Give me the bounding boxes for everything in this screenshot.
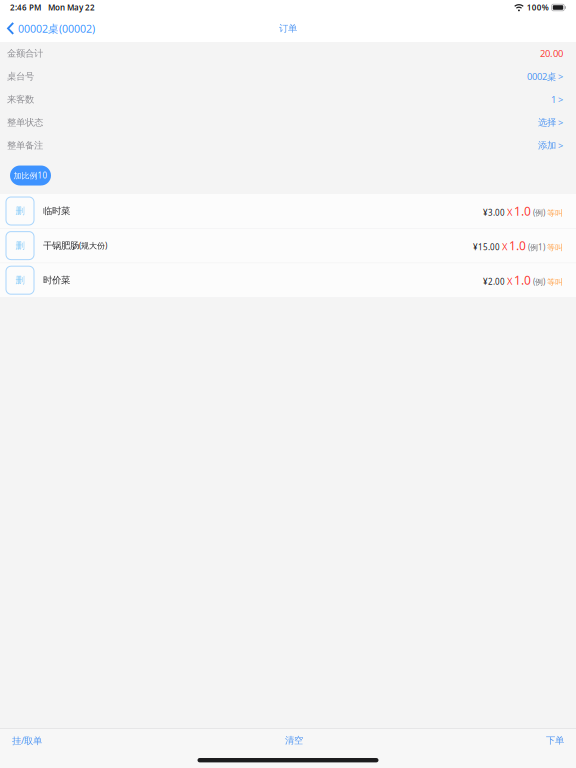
staticText: 1 bbox=[551, 93, 556, 106]
button[interactable]: 00002桌(00002) bbox=[0, 17, 101, 40]
button[interactable]: 清空 bbox=[275, 731, 313, 750]
staticText: ¥3.00 bbox=[483, 207, 505, 218]
button[interactable]: Delete item bbox=[6, 266, 34, 294]
staticText: 加比例10 bbox=[13, 170, 47, 181]
staticText: 来客数 bbox=[7, 94, 34, 105]
staticText: 等叫 bbox=[545, 208, 563, 218]
staticText: 删 bbox=[15, 240, 24, 251]
staticText: > bbox=[556, 70, 563, 83]
button[interactable]: 删 bbox=[0, 263, 576, 297]
staticText: 挂/取单 bbox=[12, 734, 42, 747]
button[interactable]: 删 bbox=[0, 194, 576, 228]
staticText: > bbox=[556, 93, 563, 106]
staticText: (例) bbox=[531, 207, 545, 218]
staticText: > bbox=[556, 116, 563, 129]
button[interactable]: 来客数 bbox=[0, 88, 576, 111]
staticText: 1.0 bbox=[514, 203, 531, 219]
staticText: 清空 bbox=[285, 735, 303, 746]
button[interactable]: 挂/取单 bbox=[2, 730, 52, 751]
staticText: 等叫 bbox=[545, 243, 563, 252]
staticText: X bbox=[505, 206, 514, 218]
staticText: (例1) bbox=[526, 242, 545, 252]
staticText: 删 bbox=[15, 274, 24, 286]
button[interactable]: 订单 bbox=[271, 18, 305, 39]
button[interactable]: 下单 bbox=[536, 731, 574, 750]
button[interactable]: 整单状态 bbox=[0, 111, 576, 134]
staticText: 整单备注 bbox=[7, 140, 43, 151]
staticText: 下单 bbox=[546, 735, 564, 746]
staticText: X bbox=[505, 275, 514, 287]
button[interactable]: 整单备注 bbox=[0, 134, 576, 157]
staticText: 订单 bbox=[279, 23, 297, 34]
button[interactable]: 金额合计 bbox=[0, 42, 576, 65]
staticText: X bbox=[500, 240, 509, 253]
staticText: (规大份) bbox=[79, 240, 107, 251]
staticText: 00002桌(00002) bbox=[18, 21, 95, 36]
button[interactable]: 删 bbox=[0, 229, 576, 263]
button[interactable]: 桌台号 bbox=[0, 65, 576, 88]
button[interactable]: Delete item bbox=[6, 232, 34, 260]
staticText: 等叫 bbox=[545, 277, 563, 287]
staticText: ¥2.00 bbox=[483, 276, 505, 287]
staticText: 2:46 PM bbox=[10, 2, 41, 13]
staticText: 20.00 bbox=[540, 47, 563, 60]
staticText: 1.0 bbox=[509, 238, 526, 253]
staticText: ¥15.00 bbox=[473, 242, 500, 252]
staticText: 1.0 bbox=[514, 272, 531, 288]
staticText: 删 bbox=[15, 205, 24, 217]
staticText: Mon May 22 bbox=[48, 2, 95, 13]
staticText: 金额合计 bbox=[7, 48, 43, 59]
staticText: 临时菜 bbox=[43, 205, 70, 217]
staticText: 整单状态 bbox=[7, 117, 43, 128]
staticText: 添加 bbox=[538, 140, 556, 151]
staticText: 桌台号 bbox=[7, 71, 34, 82]
staticText: 时价菜 bbox=[43, 274, 70, 286]
staticText: 选择 bbox=[538, 117, 556, 128]
staticText: (例) bbox=[531, 276, 545, 287]
staticText: 100% bbox=[527, 2, 549, 13]
staticText: 0002桌 bbox=[527, 70, 556, 83]
staticText: > bbox=[556, 139, 563, 152]
button[interactable]: Delete item bbox=[6, 197, 34, 225]
button[interactable]: 加比例10 bbox=[10, 165, 51, 185]
staticText: 干锅肥肠 bbox=[43, 240, 79, 251]
